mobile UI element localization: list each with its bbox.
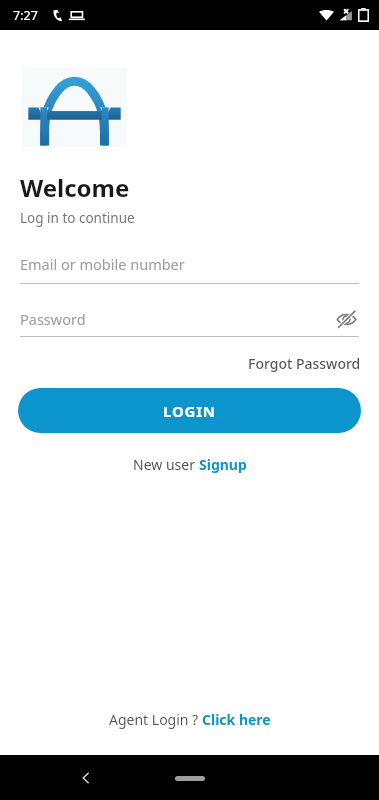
button[interactable]: Forgot Password — [230, 350, 379, 377]
button[interactable]: New user — [125, 451, 255, 478]
staticText: Click here — [202, 710, 271, 729]
staticText: 7:27 — [13, 7, 38, 24]
button[interactable]: Home — [161, 767, 219, 789]
staticText: Password — [20, 309, 333, 329]
staticText: Forgot Password — [248, 354, 361, 373]
button[interactable]: Password — [20, 306, 359, 337]
staticText: Signup — [199, 455, 247, 474]
staticText: New user — [133, 455, 199, 474]
button[interactable]: Show password — [333, 306, 359, 332]
staticText: LOGIN — [163, 401, 216, 421]
staticText: Welcome — [20, 171, 130, 204]
staticText: Email or mobile number — [20, 254, 185, 274]
button[interactable]: Email or mobile number — [20, 254, 359, 284]
staticText: Agent Login ? — [109, 710, 202, 729]
button[interactable]: LOGIN — [18, 388, 361, 433]
button[interactable]: Agent Login ? — [101, 706, 279, 733]
button[interactable]: Back — [70, 762, 102, 794]
staticText: Log in to continue — [20, 209, 135, 227]
